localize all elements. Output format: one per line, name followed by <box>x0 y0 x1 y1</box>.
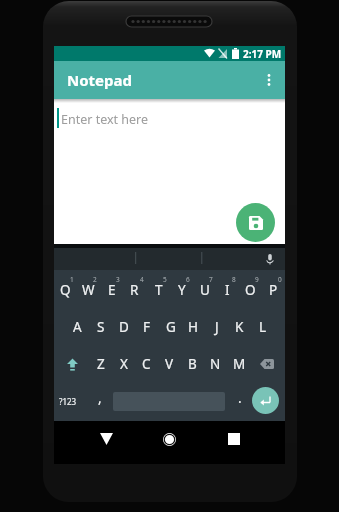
staticText: Notepad <box>67 70 132 90</box>
staticText: V <box>165 355 174 373</box>
staticText: 7 <box>209 275 213 284</box>
staticText: R <box>130 281 139 299</box>
staticText: Z <box>97 355 105 373</box>
button[interactable]: C <box>136 351 157 377</box>
button[interactable] <box>259 358 274 369</box>
button[interactable]: Q <box>55 277 76 303</box>
staticText: F <box>143 318 151 336</box>
staticText: . <box>238 389 242 407</box>
button[interactable]: , <box>89 385 110 411</box>
staticText: G <box>166 318 176 336</box>
button[interactable]: P <box>263 277 284 303</box>
staticText: X <box>120 355 128 373</box>
button[interactable]: L <box>252 314 273 340</box>
staticText: 6 <box>186 275 190 284</box>
staticText: T <box>155 281 163 299</box>
staticText: S <box>97 318 105 336</box>
button[interactable]: F <box>136 314 157 340</box>
staticText: 0 <box>278 275 282 284</box>
staticText: U <box>200 281 210 299</box>
button[interactable]: B <box>182 351 203 377</box>
staticText: C <box>142 355 151 373</box>
staticText: O <box>245 281 256 299</box>
staticText: 5 <box>163 275 167 284</box>
button[interactable]: W <box>78 277 99 303</box>
staticText: 8 <box>232 275 236 284</box>
button[interactable]: H <box>183 314 204 340</box>
staticText: Enter text here <box>61 111 149 128</box>
button[interactable]: . <box>229 385 250 411</box>
button[interactable]: Z <box>90 351 111 377</box>
button[interactable]: Enter text here <box>54 99 285 244</box>
button[interactable]: ?123 <box>56 393 80 409</box>
staticText: ?123 <box>59 396 77 407</box>
button[interactable]: O <box>240 277 261 303</box>
button[interactable]: I <box>217 277 238 303</box>
staticText: Y <box>178 281 186 299</box>
button[interactable] <box>159 429 179 449</box>
button[interactable] <box>96 429 116 449</box>
staticText: W <box>82 281 95 299</box>
staticText: E <box>108 281 116 299</box>
staticText: 3 <box>116 275 120 284</box>
staticText: J <box>215 318 219 336</box>
button[interactable]: T <box>148 277 169 303</box>
button[interactable]: V <box>159 351 180 377</box>
button[interactable]: E <box>101 277 122 303</box>
button[interactable]: R <box>124 277 145 303</box>
staticText: M <box>233 355 246 373</box>
button[interactable] <box>252 387 279 414</box>
button[interactable]: M <box>229 351 250 377</box>
staticText: L <box>259 318 267 336</box>
button[interactable]: G <box>160 314 181 340</box>
staticText: 2:17 PM <box>243 47 282 61</box>
button[interactable] <box>65 357 79 371</box>
staticText: Q <box>60 281 71 299</box>
staticText: K <box>235 318 244 336</box>
staticText: B <box>188 355 197 373</box>
staticText: , <box>98 389 102 407</box>
button[interactable]: K <box>229 314 250 340</box>
staticText: 4 <box>140 275 144 284</box>
button[interactable]: U <box>194 277 215 303</box>
button[interactable]: S <box>90 314 111 340</box>
button[interactable]: Y <box>171 277 192 303</box>
staticText: 1 <box>70 275 74 284</box>
button[interactable]: J <box>206 314 227 340</box>
button[interactable]: D <box>113 314 134 340</box>
staticText: A <box>73 318 82 336</box>
button[interactable] <box>259 70 279 90</box>
button[interactable]: X <box>113 351 134 377</box>
staticText: I <box>225 281 230 299</box>
staticText: D <box>119 318 129 336</box>
button[interactable] <box>224 429 244 449</box>
staticText: P <box>269 281 278 299</box>
button[interactable]: N <box>205 351 226 377</box>
staticText: 2 <box>93 275 97 284</box>
staticText: H <box>188 318 199 336</box>
staticText: N <box>210 355 221 373</box>
staticText: 9 <box>255 275 259 284</box>
button[interactable]: A <box>67 314 88 340</box>
button[interactable] <box>236 203 275 242</box>
